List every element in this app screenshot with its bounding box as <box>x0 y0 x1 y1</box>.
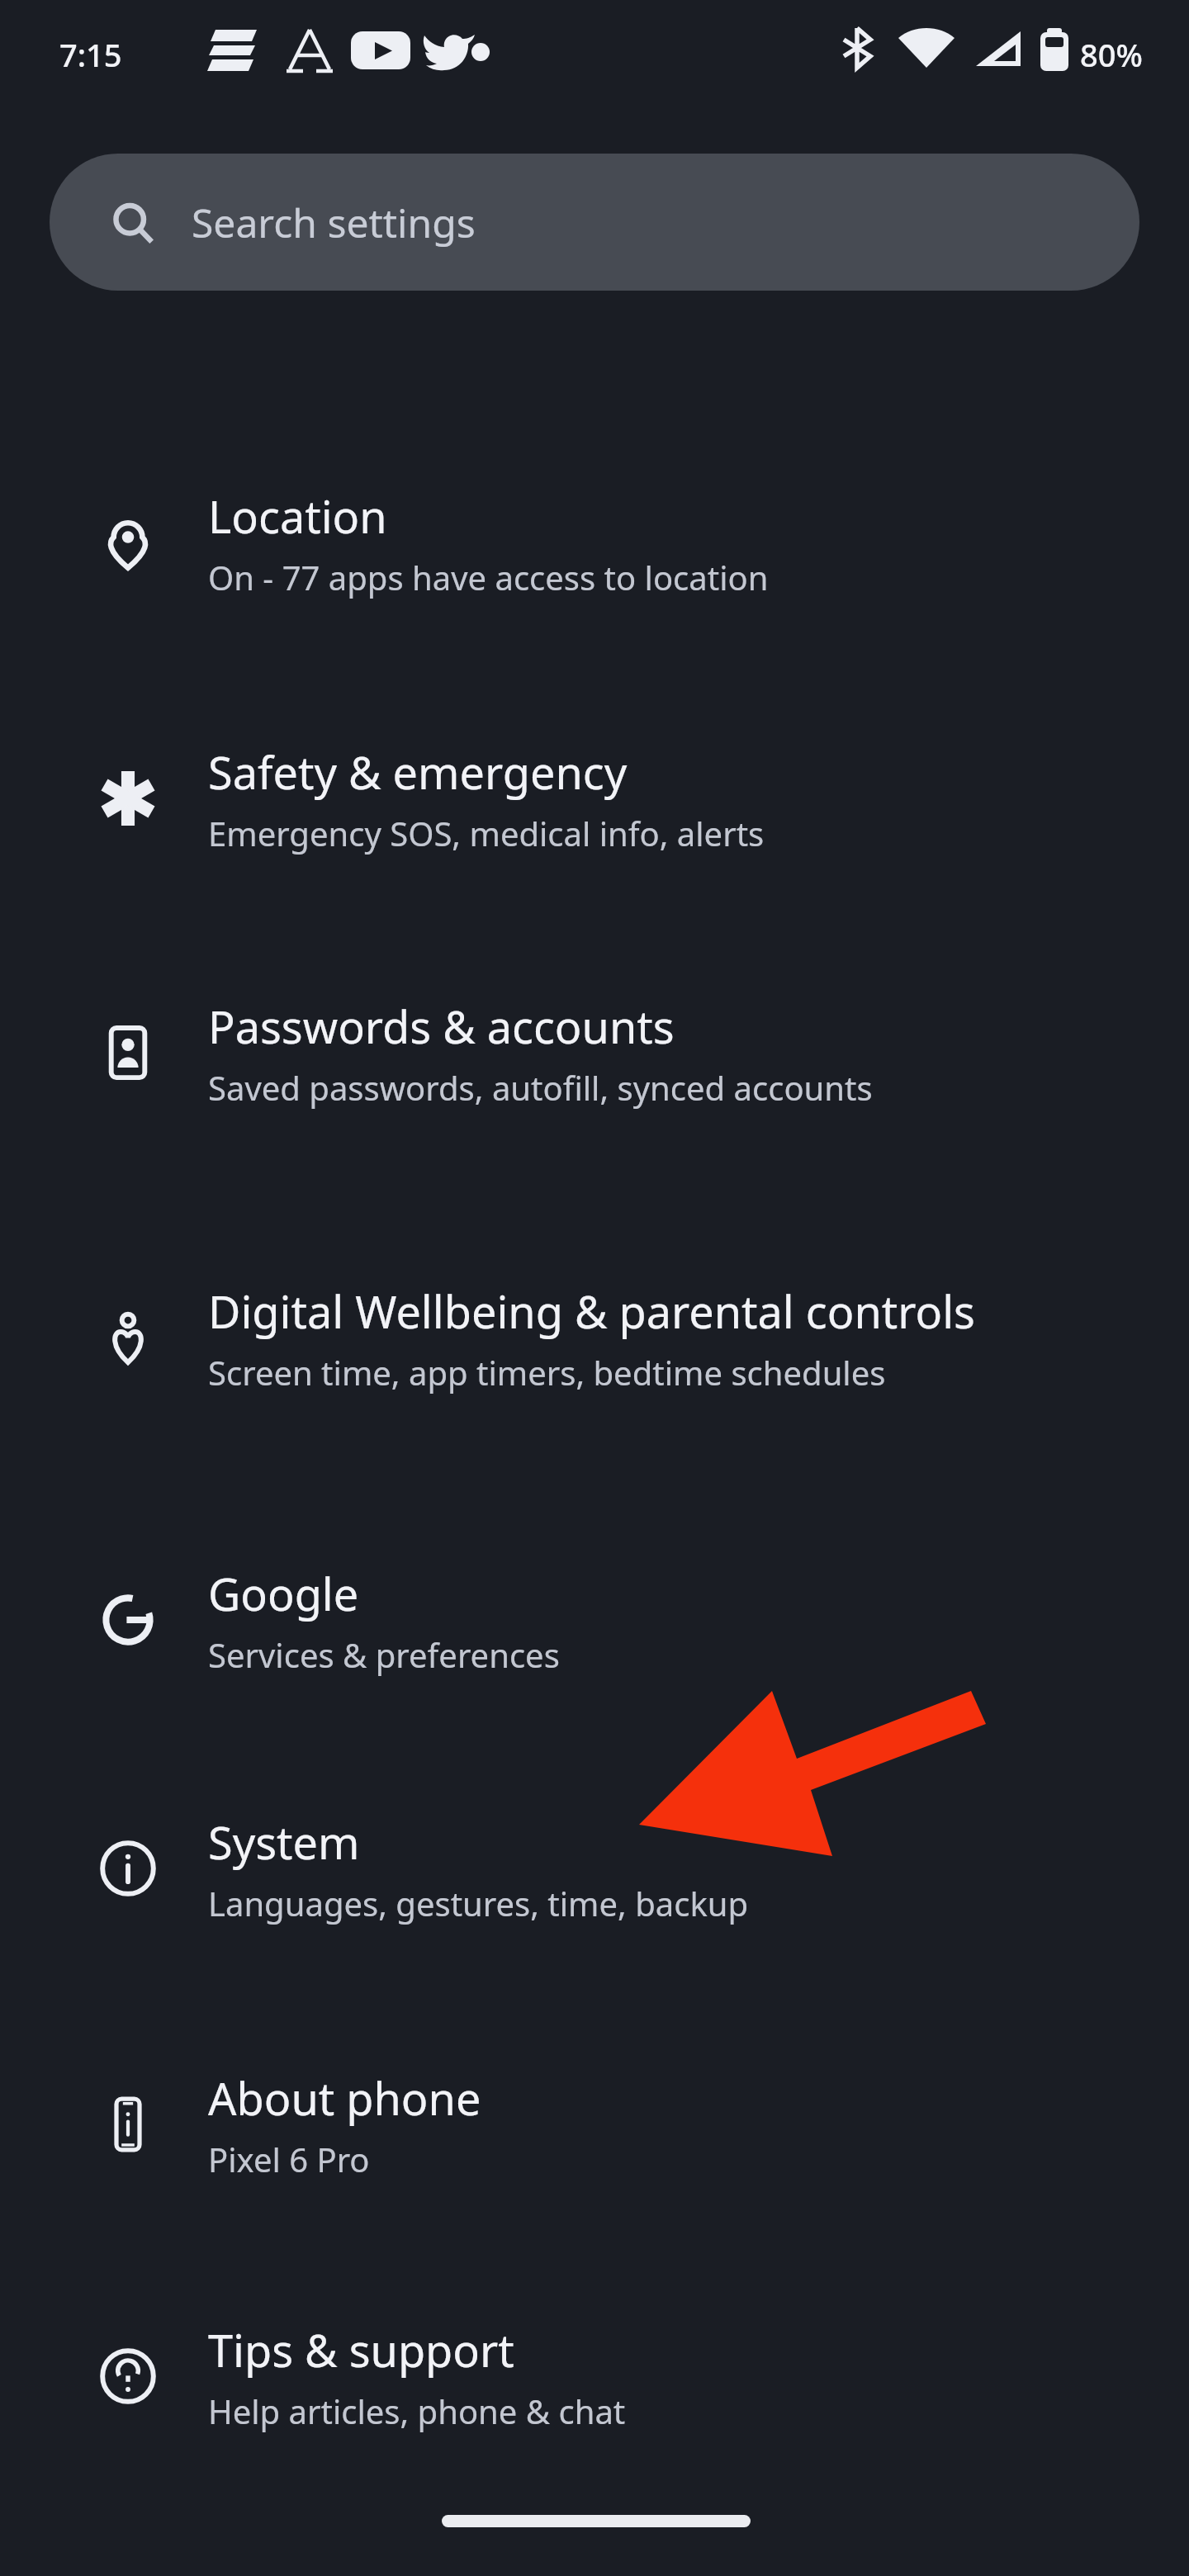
staticText: Search settings <box>192 196 476 249</box>
staticText: Location <box>208 485 387 547</box>
staticText: Saved passwords, autofill, synced accoun… <box>208 1065 873 1110</box>
button[interactable]: System <box>0 1765 1189 1972</box>
staticText: On - 77 apps have access to location <box>208 555 769 599</box>
staticText: Screen time, app timers, bedtime schedul… <box>208 1350 886 1395</box>
staticText: Help articles, phone & chat <box>208 2389 626 2433</box>
button[interactable]: Google <box>0 1517 1189 1723</box>
button[interactable]: About phone <box>0 2021 1189 2228</box>
button[interactable]: Search settings <box>50 154 1139 291</box>
staticText: About phone <box>208 2067 481 2129</box>
button[interactable]: Tips & support <box>0 2273 1189 2479</box>
button[interactable]: Passwords & accounts <box>0 949 1189 1156</box>
staticText: System <box>208 1811 360 1873</box>
staticText: Pixel 6 Pro <box>208 2137 370 2181</box>
button[interactable]: Location <box>0 439 1189 646</box>
staticText: Languages, gestures, time, backup <box>208 1881 749 1925</box>
staticText: Digital Wellbeing & parental controls <box>208 1281 975 1342</box>
staticText: 7:15 <box>59 33 122 76</box>
button[interactable]: Safety & emergency <box>0 695 1189 902</box>
staticText: Services & preferences <box>208 1632 560 1677</box>
staticText: Passwords & accounts <box>208 996 675 1057</box>
staticText: Google <box>208 1563 359 1624</box>
staticText: Tips & support <box>208 2319 514 2380</box>
button[interactable]: Digital Wellbeing & parental controls <box>0 1214 1189 1461</box>
staticText: Safety & emergency <box>208 741 628 803</box>
staticText: 80% <box>1080 33 1143 76</box>
staticText: Emergency SOS, medical info, alerts <box>208 811 765 855</box>
